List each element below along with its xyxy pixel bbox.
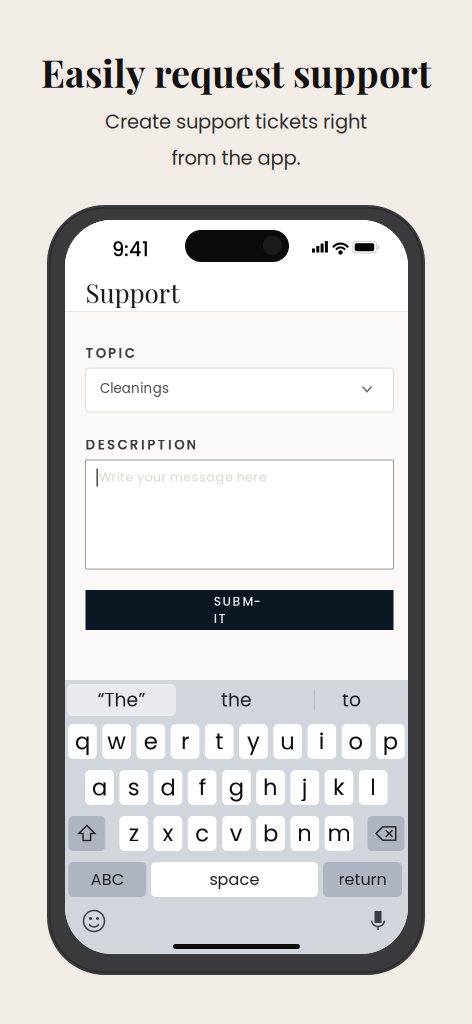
button[interactable]: y (239, 724, 268, 759)
staticText: l (370, 772, 376, 803)
staticText: ABC (91, 868, 124, 891)
button[interactable]: h (256, 770, 285, 805)
button[interactable]: b (256, 816, 285, 851)
button[interactable]: r (171, 724, 199, 759)
button[interactable]: o (342, 724, 370, 759)
button[interactable]: i (307, 724, 336, 759)
staticText: p (383, 726, 398, 757)
button[interactable]: d (154, 770, 182, 805)
button[interactable]: the (182, 684, 291, 716)
button[interactable]: x (154, 816, 182, 851)
staticText: v (230, 818, 243, 849)
button[interactable]: “The” (67, 684, 176, 716)
staticText: e (144, 726, 158, 757)
staticText: DESCRIPTION (85, 435, 196, 454)
staticText: z (129, 818, 139, 849)
staticText: w (107, 726, 126, 757)
staticText: t (215, 726, 223, 757)
staticText: o (349, 726, 364, 757)
staticText: n (297, 818, 312, 849)
staticText: r (181, 726, 189, 757)
staticText: g (229, 772, 244, 803)
button[interactable]: l (359, 770, 387, 805)
button[interactable]: space (151, 862, 318, 897)
staticText: c (195, 818, 209, 849)
staticText: to (342, 687, 361, 713)
staticText: u (280, 726, 295, 757)
button[interactable]: v (222, 816, 251, 851)
button[interactable]: Emoji keyboard (79, 906, 109, 936)
staticText: Easily request support (41, 47, 431, 97)
button[interactable]: p (376, 724, 405, 759)
button[interactable]: SUBMIT (85, 590, 393, 630)
button[interactable]: z (119, 816, 148, 851)
button[interactable]: Backspace (367, 816, 404, 851)
button[interactable]: return (323, 862, 402, 897)
button[interactable]: to (297, 684, 406, 716)
staticText: y (247, 726, 260, 757)
staticText: b (263, 818, 278, 849)
staticText: q (75, 726, 90, 757)
button[interactable]: a (85, 770, 114, 805)
button[interactable]: g (222, 770, 251, 805)
staticText: from the app. (171, 144, 300, 172)
staticText: k (333, 772, 345, 803)
button[interactable]: t (205, 724, 234, 759)
staticText: SUBMIT (214, 593, 265, 627)
staticText: a (92, 772, 107, 803)
staticText: h (263, 772, 278, 803)
staticText: 9:41 (112, 236, 149, 263)
staticText: space (209, 868, 259, 891)
button[interactable]: n (290, 816, 319, 851)
staticText: s (128, 772, 140, 803)
staticText: TOPIC (85, 344, 135, 363)
button[interactable]: w (102, 724, 131, 759)
button[interactable]: j (290, 770, 319, 805)
button[interactable]: ABC (68, 862, 146, 897)
button[interactable]: c (188, 816, 216, 851)
staticText: d (160, 772, 175, 803)
button[interactable]: s (119, 770, 148, 805)
button[interactable]: Shift (68, 816, 105, 851)
staticText: Cleanings (100, 379, 169, 398)
staticText: Create support tickets right (105, 108, 367, 135)
staticText: x (162, 818, 173, 849)
staticText: j (302, 772, 308, 803)
staticText: the (221, 687, 252, 713)
button[interactable]: u (273, 724, 302, 759)
staticText: “The” (97, 687, 145, 713)
button[interactable]: f (188, 770, 216, 805)
staticText: m (327, 818, 350, 849)
button[interactable]: k (325, 770, 353, 805)
button[interactable]: e (136, 724, 165, 759)
staticText: return (338, 868, 386, 891)
button[interactable]: m (325, 816, 353, 851)
staticText: Write your message here (99, 468, 267, 486)
button[interactable]: Dictation (366, 908, 390, 934)
staticText: Support (85, 275, 179, 310)
button[interactable]: q (68, 724, 97, 759)
staticText: f (199, 772, 206, 803)
button[interactable]: Cleanings (85, 368, 393, 412)
staticText: i (319, 726, 325, 757)
